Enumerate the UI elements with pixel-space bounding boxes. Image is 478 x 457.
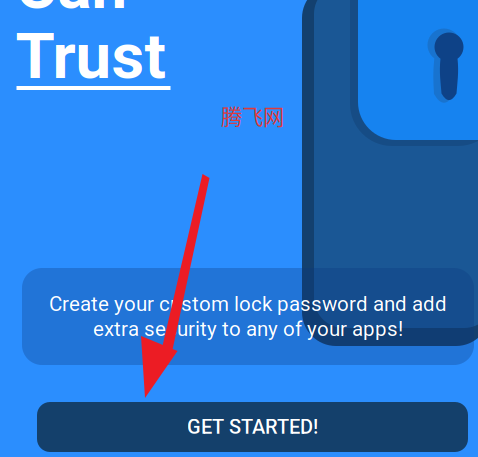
staticText: extra security to any of your apps! [93,317,403,341]
staticText: 腾飞网 [221,100,284,131]
staticText: Can [15,0,127,23]
staticText: Trust [15,19,165,93]
staticText: GET STARTED! [187,415,318,439]
staticText: Create your custom lock password and add [49,292,447,316]
button[interactable]: GET STARTED! [37,402,468,452]
